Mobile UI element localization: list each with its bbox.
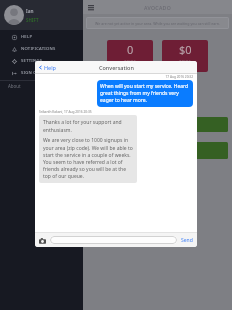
button[interactable]: Send — [179, 235, 195, 246]
button[interactable]: Attach photo — [38, 236, 47, 245]
staticText: Send — [181, 237, 193, 244]
button[interactable]: We are not yet active in your area. Whil… — [86, 17, 229, 29]
staticText: SHIFT — [26, 17, 39, 23]
button[interactable]: SETTINGS — [0, 55, 83, 67]
staticText: TRIPS — [179, 59, 192, 64]
staticText: AVOCADO — [144, 4, 172, 11]
staticText: NOTIFICATIONS — [21, 46, 56, 52]
staticText: Thanks a lot for your support and enthus… — [43, 119, 133, 133]
staticText: When will you start my service. Heard gr… — [100, 83, 190, 104]
button[interactable] — [50, 236, 177, 244]
button[interactable]: $0 — [162, 40, 208, 72]
staticText: TRIPS — [124, 59, 137, 64]
staticText: We are very close to 1000 signups in you… — [43, 137, 133, 179]
button[interactable]: Open navigation menu — [87, 4, 94, 11]
staticText: About — [8, 83, 21, 89]
staticText: We are not yet active in your area. Whil… — [95, 21, 220, 26]
button[interactable] — [107, 142, 228, 159]
staticText: SETTINGS — [21, 58, 43, 64]
staticText: Conversation — [99, 64, 134, 71]
staticText: SIGN OUT — [21, 70, 43, 76]
button[interactable]: 0 — [107, 40, 153, 72]
staticText: 0 — [127, 42, 134, 57]
button[interactable] — [107, 117, 228, 132]
button[interactable]: NOTIFICATIONS — [0, 43, 83, 55]
staticText: 17 Aug 2016 20:32 — [39, 75, 193, 79]
button[interactable]: Help — [35, 64, 59, 71]
button[interactable]: HELP — [0, 31, 83, 43]
staticText: $0 — [179, 42, 192, 57]
staticText: Help — [44, 64, 56, 71]
staticText: HELP — [21, 34, 33, 40]
button[interactable]: SIGN OUT — [0, 67, 83, 79]
staticText: Ian — [26, 8, 34, 15]
staticText: Srikanth Kakani, 17 Aug 2016 20:35 — [39, 110, 193, 114]
